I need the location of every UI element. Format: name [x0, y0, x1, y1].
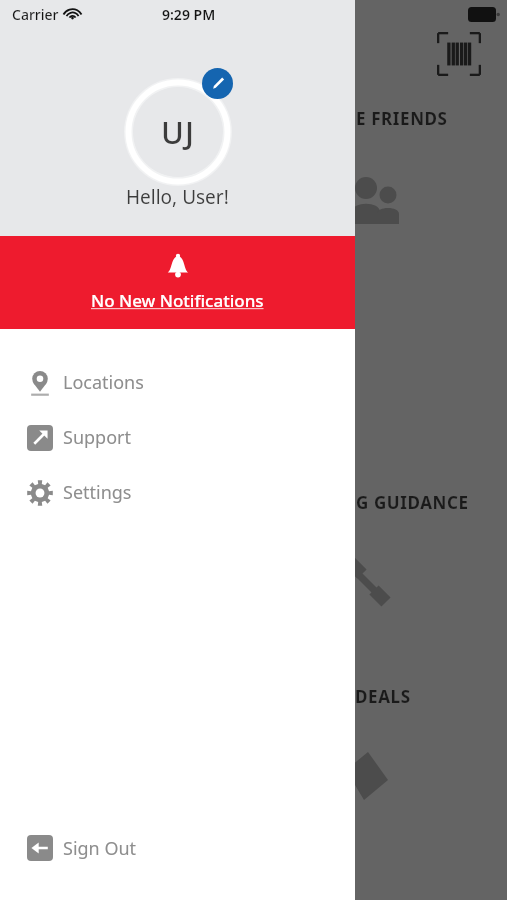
staticText: 9:29 PM [162, 5, 216, 24]
staticText: Carrier [12, 5, 59, 24]
staticText: No New Notifications [91, 289, 264, 312]
staticText: UJ [161, 111, 195, 153]
staticText: Support [63, 425, 131, 450]
button[interactable]: Sign Out [0, 822, 355, 874]
staticText: Locations [63, 370, 144, 395]
staticText: Settings [63, 480, 132, 505]
button[interactable]: Locations [0, 355, 355, 410]
button[interactable]: No New Notifications [0, 236, 355, 329]
staticText: DEALS [355, 685, 411, 708]
staticText: Sign Out [63, 836, 137, 861]
staticText: E FRIENDS [356, 107, 448, 130]
staticText: Hello, User! [126, 184, 229, 210]
button[interactable]: Settings [0, 465, 355, 520]
button[interactable]: Support [0, 410, 355, 465]
button[interactable]: Edit profile [202, 68, 233, 99]
staticText: G GUIDANCE [356, 491, 469, 514]
